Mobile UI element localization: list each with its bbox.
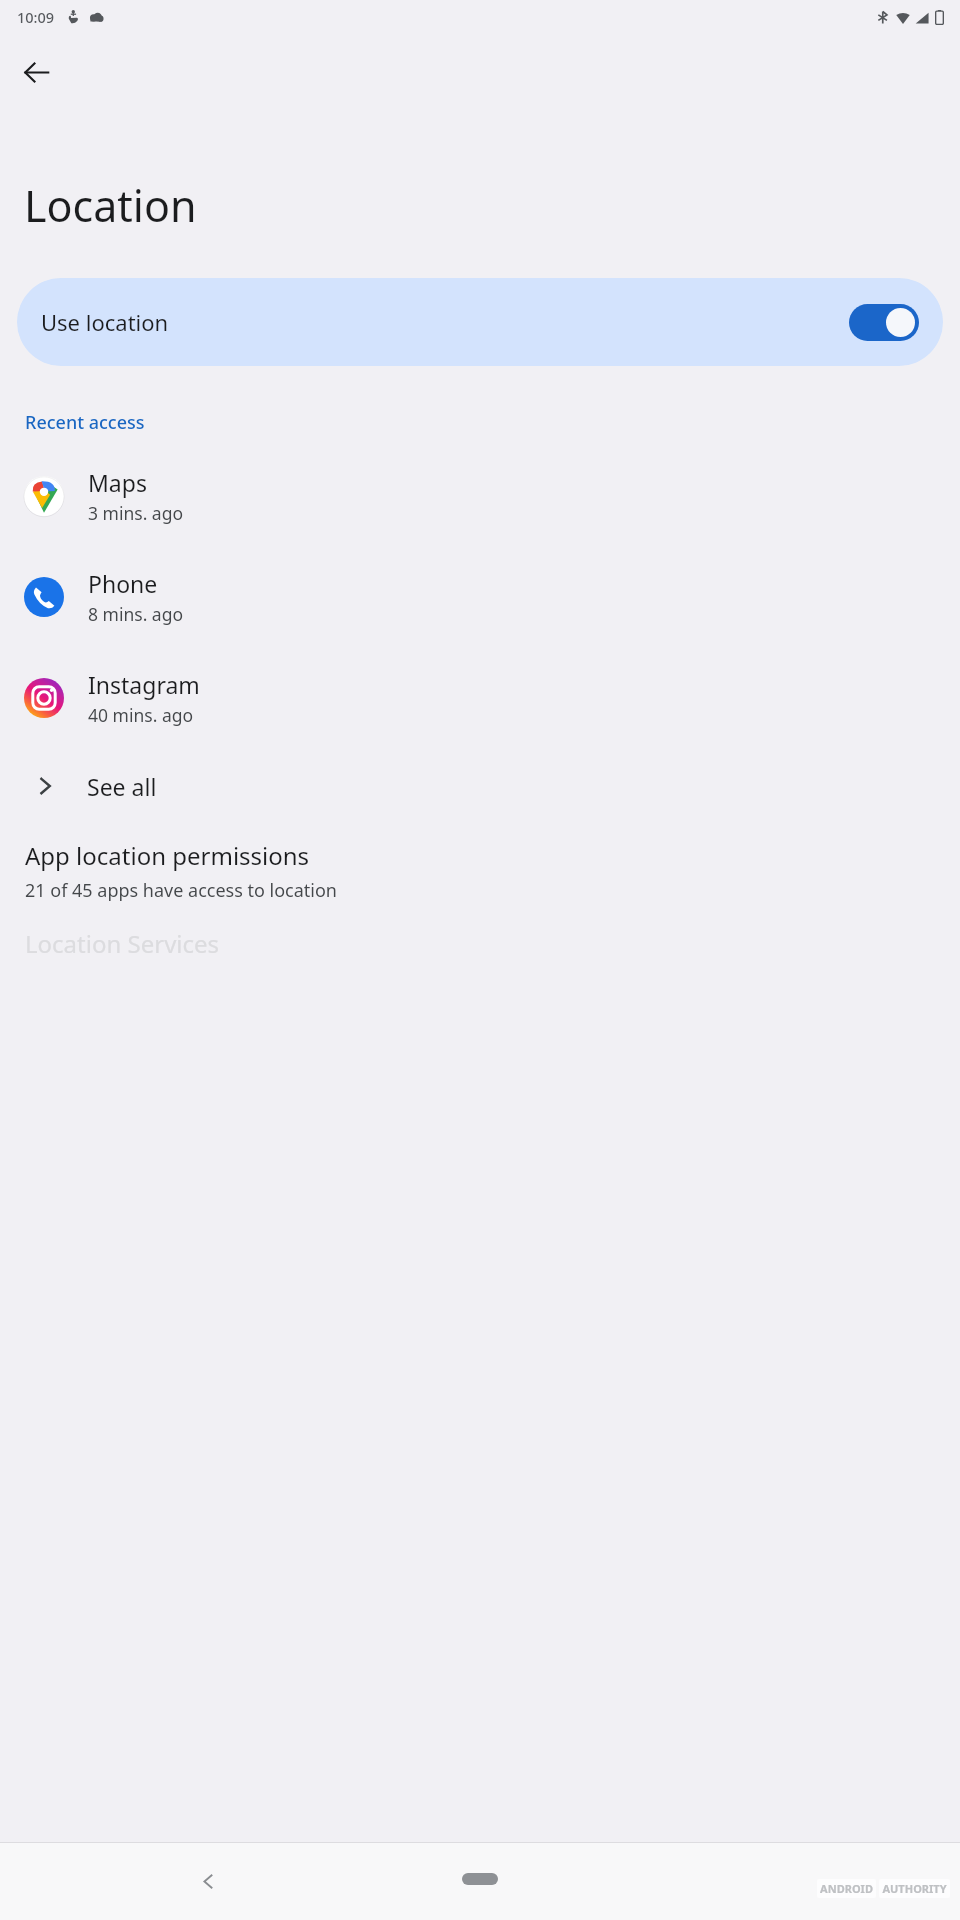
staticText: Use location — [41, 307, 169, 337]
button[interactable]: Back — [10, 46, 62, 98]
staticText: AUTHORITY — [882, 1881, 947, 1896]
staticText: 21 of 45 apps have access to location — [25, 878, 337, 903]
staticText: 3 mins. ago — [88, 501, 184, 525]
button[interactable]: Back — [180, 1853, 236, 1909]
staticText: Phone — [88, 568, 158, 599]
staticText: Maps — [88, 467, 147, 498]
staticText: Instagram — [88, 669, 200, 700]
staticText: See all — [87, 771, 157, 802]
button[interactable]: Phone — [0, 556, 960, 638]
staticText: ANDROID — [820, 1881, 873, 1896]
staticText: 8 mins. ago — [88, 602, 184, 626]
button[interactable]: Maps — [0, 455, 960, 537]
button[interactable]: App location permissions — [0, 837, 960, 909]
staticText: 40 mins. ago — [88, 703, 194, 727]
staticText: 10:09 — [17, 7, 55, 27]
staticText: Location Services — [25, 927, 220, 960]
button[interactable]: See all — [0, 756, 960, 816]
button[interactable]: Use location — [17, 278, 943, 366]
staticText: Location — [24, 176, 197, 235]
button[interactable]: Instagram — [0, 657, 960, 739]
staticText: Recent access — [25, 410, 145, 435]
button[interactable]: Use location toggle — [849, 304, 919, 341]
staticText: App location permissions — [25, 839, 310, 872]
button[interactable]: Home — [462, 1873, 498, 1885]
